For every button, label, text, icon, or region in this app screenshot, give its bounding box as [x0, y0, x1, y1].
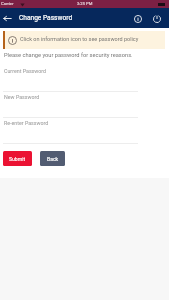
button[interactable]: Information [131, 12, 144, 25]
staticText: Carrier [1, 1, 14, 6]
staticText: Current Password [4, 68, 47, 74]
button[interactable]: Click on information icon to see passwor… [3, 31, 165, 49]
button[interactable]: Submit [3, 151, 32, 166]
staticText: 3:25 PM [77, 1, 93, 6]
staticText: Re-enter Password [4, 120, 49, 126]
staticText: Change Password [19, 14, 73, 22]
staticText: Submit [9, 156, 26, 162]
button[interactable]: Back [2, 13, 13, 24]
staticText: Please change your password for security… [4, 52, 133, 59]
staticText: Click on information icon to see passwor… [20, 36, 139, 42]
button[interactable]: Back [40, 151, 65, 166]
button[interactable]: Log out [150, 12, 163, 25]
staticText: Back [47, 156, 59, 162]
staticText: New Password [4, 94, 40, 100]
